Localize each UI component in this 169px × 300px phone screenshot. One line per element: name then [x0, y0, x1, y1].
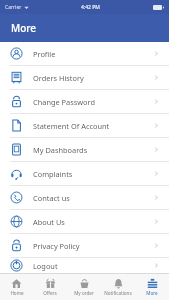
staticText: Statement Of Account: [33, 121, 154, 131]
staticText: Offers: [43, 290, 57, 296]
button[interactable]: About Us: [0, 210, 169, 234]
button[interactable]: Privacy Policy: [0, 234, 169, 258]
button[interactable]: Contact us: [0, 186, 169, 210]
staticText: My order: [74, 290, 94, 296]
staticText: Carrier: [5, 4, 22, 11]
staticText: Contact us: [33, 193, 154, 203]
button[interactable]: Home: [0, 274, 33, 300]
staticText: Notifications: [104, 290, 132, 296]
staticText: More: [11, 21, 37, 35]
staticText: Orders History: [33, 73, 154, 83]
button[interactable]: Logout: [0, 258, 169, 273]
button[interactable]: Statement Of Account: [0, 114, 169, 138]
staticText: Complaints: [33, 169, 154, 179]
staticText: Privacy Policy: [33, 241, 154, 251]
button[interactable]: Profile: [0, 42, 169, 66]
button[interactable]: Change Password: [0, 90, 169, 114]
button[interactable]: My order: [67, 274, 101, 300]
button[interactable]: Notifications: [101, 274, 135, 300]
button[interactable]: More: [135, 274, 169, 300]
staticText: Change Password: [33, 97, 154, 107]
staticText: Profile: [33, 49, 154, 59]
button[interactable]: Complaints: [0, 162, 169, 186]
staticText: About Us: [33, 217, 154, 227]
button[interactable]: My Dashboards: [0, 138, 169, 162]
staticText: Logout: [33, 261, 154, 271]
staticText: My Dashboards: [33, 145, 154, 155]
staticText: More: [146, 290, 158, 296]
button[interactable]: Orders History: [0, 66, 169, 90]
button[interactable]: Offers: [33, 274, 67, 300]
staticText: Home: [10, 290, 24, 296]
staticText: 4:42 PM: [81, 4, 100, 11]
